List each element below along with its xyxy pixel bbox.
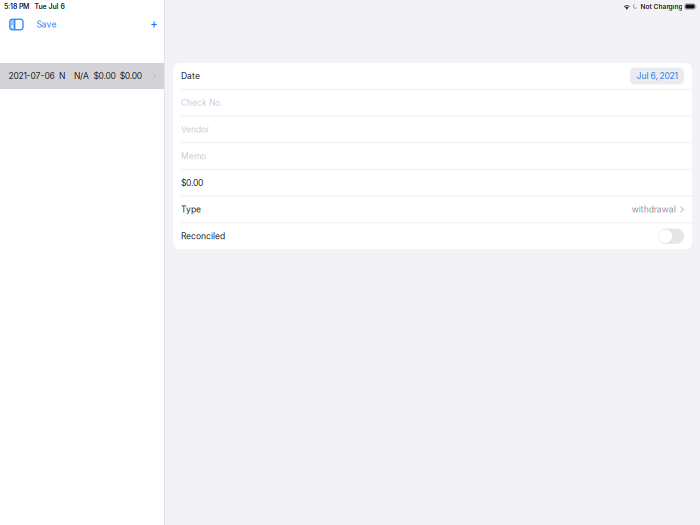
staticText: Type: [181, 204, 201, 215]
staticText: Memo: [181, 151, 206, 161]
staticText: 2021-07-06: [8, 71, 54, 81]
button[interactable]: Type: [173, 196, 692, 222]
staticText: Tue Jul 6: [34, 2, 64, 11]
staticText: Jul 6, 2021: [636, 71, 677, 81]
staticText: N: [59, 71, 65, 81]
button[interactable]: Reconciled: [658, 228, 684, 244]
staticText: N/A: [74, 71, 89, 81]
staticText: Not Charging: [640, 2, 682, 10]
staticText: Date: [181, 71, 200, 81]
staticText: $0.00: [94, 71, 116, 81]
staticText: Check No.: [181, 97, 222, 108]
button[interactable]: Toggle Sidebar: [5, 14, 27, 35]
staticText: $0.00: [181, 178, 203, 188]
staticText: Vendor: [181, 124, 209, 134]
staticText: withdrawal: [632, 204, 676, 215]
button[interactable]: Add: [145, 15, 163, 34]
staticText: Save: [36, 19, 56, 30]
staticText: Reconciled: [181, 231, 225, 241]
button[interactable]: Save: [27, 13, 61, 36]
staticText: 5:18 PM: [4, 2, 29, 11]
button[interactable]: 2021-07-06: [0, 63, 164, 89]
button[interactable]: Jul 6, 2021: [630, 68, 684, 84]
staticText: $0.00: [120, 71, 142, 81]
